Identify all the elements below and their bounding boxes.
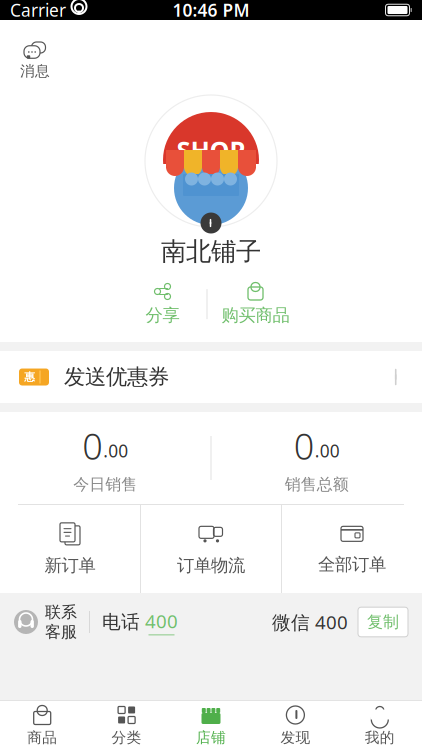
staticText: 订单物流 (177, 555, 245, 576)
button[interactable]: 商品 (0, 701, 84, 750)
button[interactable]: Shop details (200, 212, 221, 233)
button[interactable]: 发现 (253, 701, 338, 750)
button[interactable]: 联系 客服 (14, 602, 77, 642)
staticText: 商品 (27, 728, 57, 746)
button[interactable]: 复制 (358, 607, 408, 637)
staticText: Carrier (10, 0, 66, 21)
staticText: 全部订单 (318, 554, 386, 575)
button[interactable]: 购买商品 (207, 281, 303, 327)
staticText: 我的 (365, 728, 395, 746)
staticText: 销售总额 (285, 475, 349, 494)
button[interactable]: 消息 (14, 38, 56, 82)
staticText: 今日销售 (73, 475, 137, 494)
button[interactable]: 订单物流 (141, 505, 281, 593)
staticText: .00 (103, 439, 128, 462)
button[interactable]: 分类 (84, 701, 169, 750)
button[interactable]: 惠 (0, 351, 422, 403)
button[interactable]: 分享 (118, 281, 206, 327)
staticText: 400 (145, 609, 178, 633)
staticText: 发送优惠券 (64, 364, 169, 390)
staticText: 分享 (145, 304, 179, 326)
staticText: 新订单 (44, 555, 95, 576)
staticText: SHOP (176, 133, 245, 167)
staticText: 店铺 (196, 728, 226, 746)
staticText: 分类 (112, 728, 142, 746)
button[interactable]: 电话 (102, 609, 178, 635)
button[interactable]: 店铺 (169, 701, 253, 750)
staticText: 0 (294, 422, 315, 470)
staticText: 南北铺子 (161, 236, 261, 267)
button[interactable]: 我的 (338, 701, 422, 750)
staticText: 10:46 PM (172, 0, 249, 21)
staticText: 发现 (280, 728, 310, 746)
button[interactable]: 新订单 (0, 505, 140, 593)
staticText: .00 (315, 439, 340, 462)
staticText: 购买商品 (221, 304, 289, 326)
staticText: 联系 客服 (45, 602, 77, 642)
staticText: 复制 (367, 612, 399, 632)
staticText: 0 (82, 422, 103, 470)
staticText: 微信 400 (272, 610, 348, 634)
staticText: 电话 (102, 610, 140, 633)
staticText: 惠 (24, 370, 35, 383)
staticText: 消息 (20, 62, 50, 80)
button[interactable]: 全部订单 (282, 505, 422, 593)
